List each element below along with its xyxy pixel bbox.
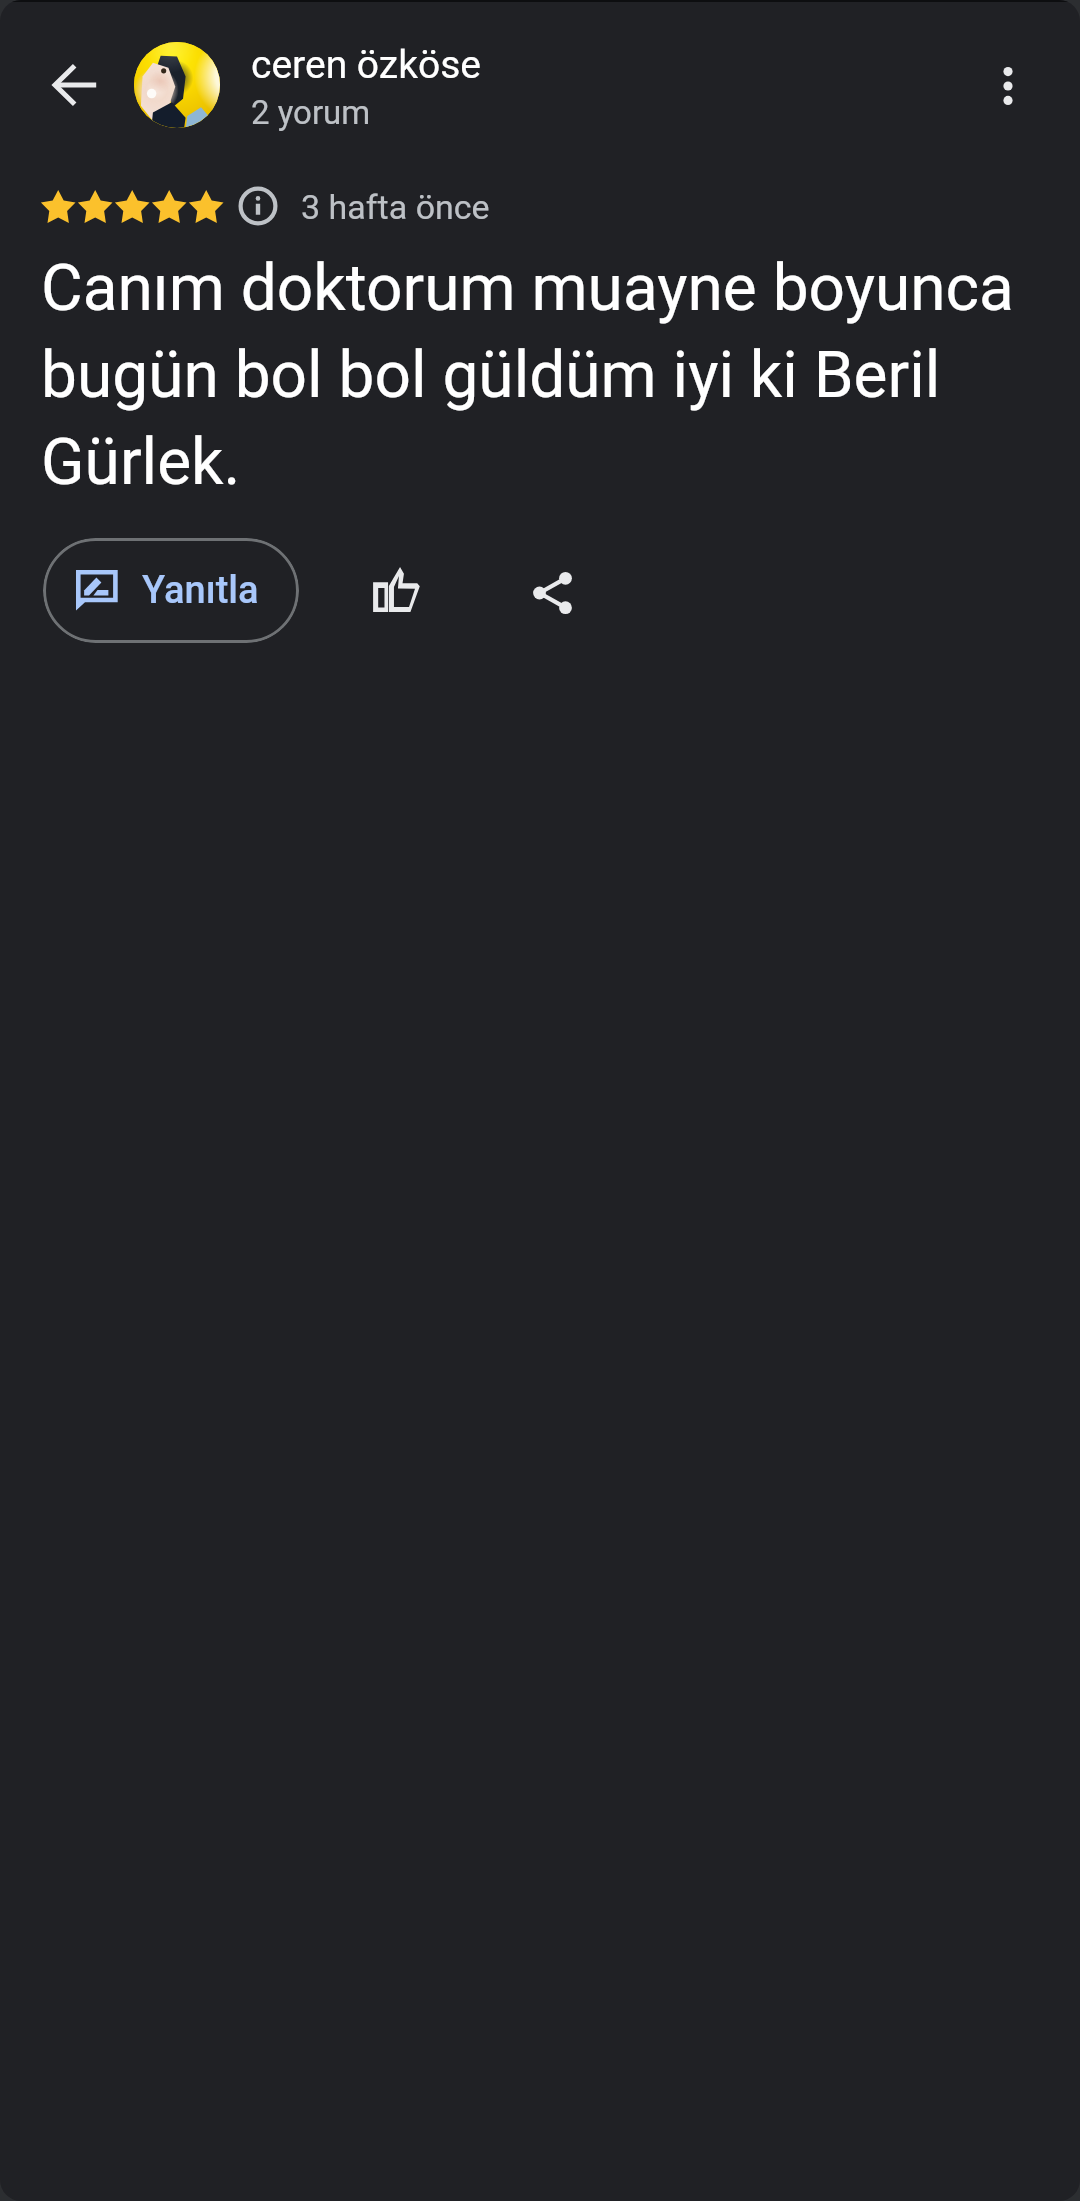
button[interactable]: Back xyxy=(32,41,120,129)
staticText: Yanıtla xyxy=(142,568,259,613)
button[interactable]: Like xyxy=(351,544,441,634)
button[interactable]: Rating information xyxy=(222,170,294,242)
staticText: 3 hafta önce xyxy=(301,187,490,227)
staticText: Canım doktorum muayne boyunca bugün bol … xyxy=(41,241,1041,502)
staticText: 2 yorum xyxy=(251,93,371,132)
button[interactable]: Share xyxy=(507,548,597,638)
staticText: ceren özköse xyxy=(251,42,481,88)
button[interactable]: Yanıtla xyxy=(43,538,299,643)
button[interactable]: More options xyxy=(963,41,1052,130)
